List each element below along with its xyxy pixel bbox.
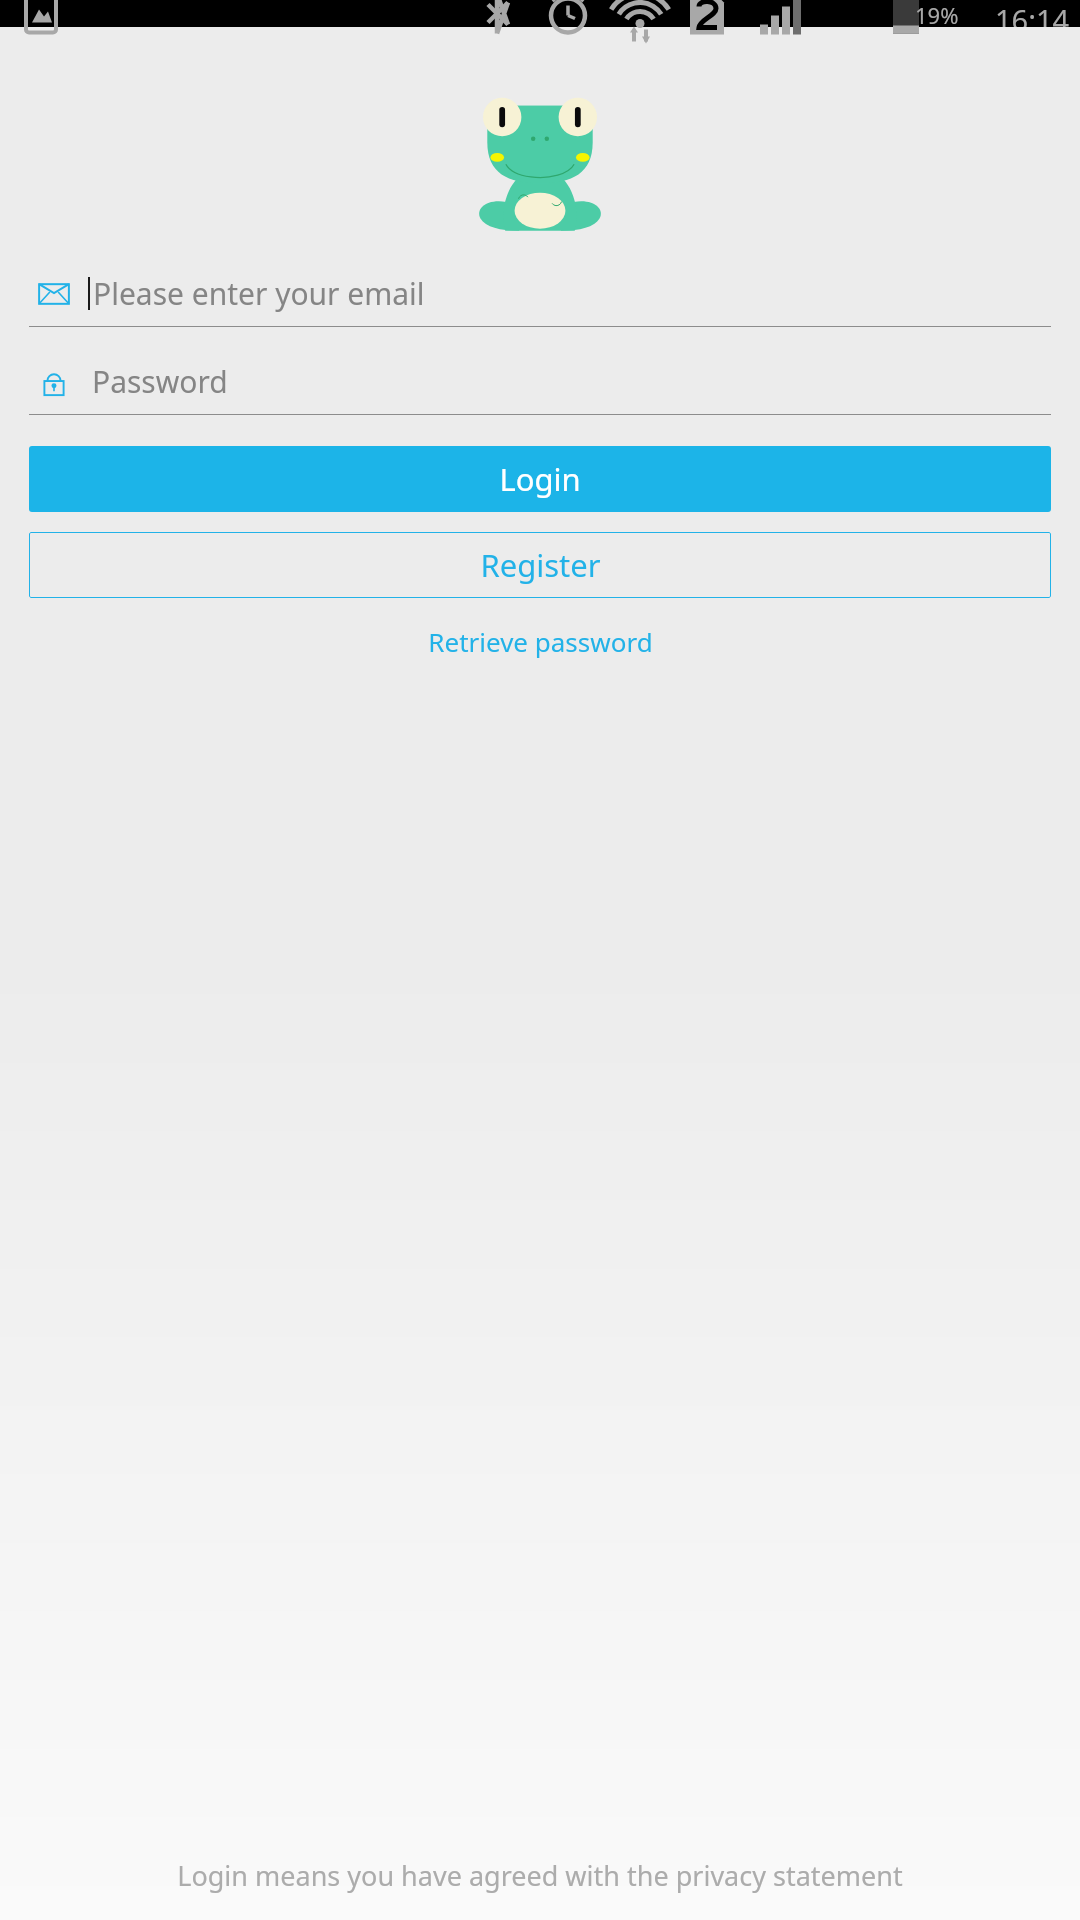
staticText: Login [499,458,581,500]
button[interactable]: Register [29,532,1051,598]
staticText: Retrieve password [428,624,653,659]
staticText: Login means you have agreed with the pri… [177,1857,903,1894]
button[interactable]: Password [29,353,1051,415]
button[interactable]: Retrieve password [418,620,663,663]
button[interactable]: Email [29,265,1051,327]
staticText: Please enter your email [93,273,425,314]
other: Password [38,366,70,398]
button[interactable]: Login [29,446,1051,512]
staticText: Password [92,361,228,402]
other: Email [38,278,70,310]
button[interactable]: Login means you have agreed with the pri… [18,1857,1062,1894]
staticText: 19% [915,0,959,27]
staticText: 16:14 [995,0,1070,27]
staticText: Register [480,544,601,586]
